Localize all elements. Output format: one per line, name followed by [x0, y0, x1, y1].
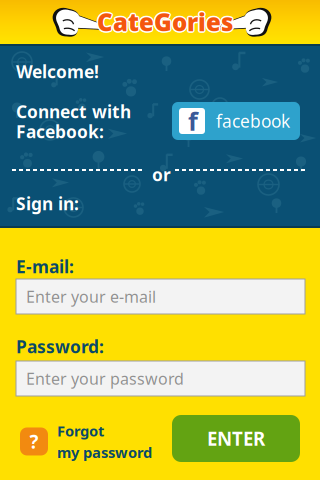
staticText: Connect with [16, 100, 131, 123]
staticText: Enter your password [26, 368, 184, 389]
staticText: or [152, 163, 171, 186]
staticText: my password [57, 442, 152, 462]
staticText: Sign in: [16, 192, 79, 215]
staticText: CateGories [97, 7, 233, 39]
staticText: CateGories [96, 5, 232, 37]
button[interactable]: ENTER [172, 415, 300, 462]
staticText: Welcome! [16, 60, 99, 83]
staticText: Forgot [57, 421, 104, 440]
staticText: ? [29, 429, 38, 454]
button[interactable]: f [172, 102, 300, 140]
staticText: ENTER [207, 426, 265, 451]
staticText: Password: [16, 335, 104, 358]
staticText: CateGories [96, 7, 232, 39]
staticText: CateGories [97, 5, 233, 36]
staticText: Facebook: [16, 120, 104, 143]
staticText: f [188, 104, 198, 138]
staticText: CateGories [98, 6, 234, 38]
staticText: CateGories [98, 5, 234, 37]
staticText: E-mail: [16, 255, 74, 278]
staticText: CateGories [98, 7, 234, 39]
staticText: Enter your e-mail [26, 286, 156, 307]
button[interactable]: ? [20, 421, 152, 462]
staticText: CateGories [96, 6, 232, 38]
staticText: facebook [216, 109, 290, 132]
staticText: CateGories [97, 6, 233, 38]
